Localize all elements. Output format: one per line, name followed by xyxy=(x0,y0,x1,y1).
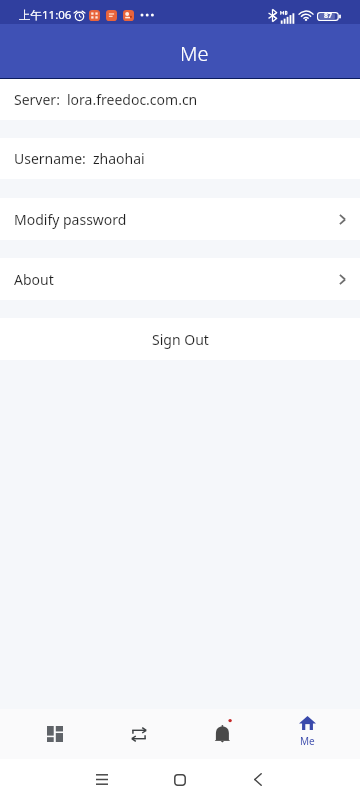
button[interactable]: Modify password xyxy=(0,198,360,240)
button[interactable]: Back xyxy=(219,759,297,800)
button[interactable]: Server: xyxy=(0,79,360,120)
button[interactable]: Home xyxy=(141,759,219,800)
staticText: 87 xyxy=(324,11,333,21)
button[interactable]: Username: xyxy=(0,138,360,179)
button[interactable]: Dashboard xyxy=(12,709,97,759)
button[interactable]: Notifications xyxy=(181,709,265,759)
staticText: Modify password xyxy=(14,210,127,229)
staticText: Sign Out xyxy=(152,330,209,349)
button[interactable]: About xyxy=(0,258,360,300)
button[interactable]: Recent apps xyxy=(62,759,141,800)
staticText: Me xyxy=(300,734,315,748)
staticText: zhaohai xyxy=(93,149,145,168)
button[interactable]: Me xyxy=(265,709,349,759)
staticText: About xyxy=(14,270,54,289)
staticText: 上午11:06 xyxy=(19,7,72,23)
button[interactable]: Transfer xyxy=(97,709,181,759)
staticText: Username: xyxy=(14,149,86,168)
staticText: lora.freedoc.com.cn xyxy=(67,90,198,109)
button[interactable]: Sign Out xyxy=(0,318,360,360)
staticText: Me xyxy=(180,40,209,67)
staticText: Server: xyxy=(14,90,60,109)
